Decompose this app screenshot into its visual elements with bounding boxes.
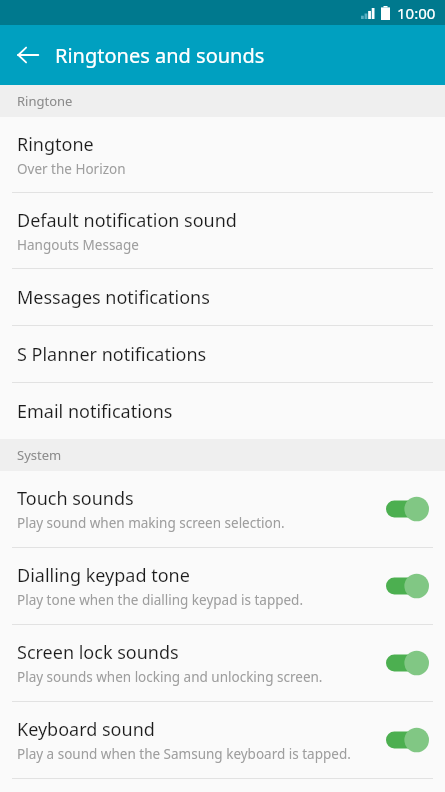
button[interactable]: Toggle: [386, 572, 429, 600]
staticText: Messages notifications: [17, 285, 210, 310]
button[interactable]: Default notification sound: [0, 193, 445, 268]
staticText: Play sounds when locking and unlocking s…: [17, 668, 323, 686]
button[interactable]: Email notifications: [0, 383, 445, 439]
button[interactable]: Touch sounds: [0, 471, 445, 547]
button[interactable]: Dialling keypad tone: [0, 548, 445, 624]
staticText: Play a sound when the Samsung keyboard i…: [17, 745, 351, 763]
staticText: Default notification sound: [17, 208, 237, 233]
staticText: Screen lock sounds: [17, 640, 179, 665]
button[interactable]: S Planner notifications: [0, 326, 445, 382]
button[interactable]: Toggle: [386, 649, 429, 677]
staticText: Ringtone: [17, 92, 73, 110]
staticText: Keyboard sound: [17, 717, 155, 742]
staticText: Touch sounds: [17, 486, 134, 511]
button[interactable]: Keyboard sound: [0, 702, 445, 778]
staticText: Ringtones and sounds: [55, 42, 265, 69]
button[interactable]: Back: [4, 31, 52, 79]
staticText: Play tone when the dialling keypad is ta…: [17, 591, 304, 609]
staticText: S Planner notifications: [17, 342, 207, 367]
staticText: Hangouts Message: [17, 236, 139, 254]
button[interactable]: Screen lock sounds: [0, 625, 445, 701]
button[interactable]: Toggle: [386, 726, 429, 754]
staticText: System: [17, 446, 62, 464]
staticText: Dialling keypad tone: [17, 563, 190, 588]
staticText: Email notifications: [17, 399, 173, 424]
staticText: Over the Horizon: [17, 160, 126, 178]
button[interactable]: Ringtone: [0, 117, 445, 192]
staticText: Play sound when making screen selection.: [17, 514, 285, 532]
staticText: 10:00: [397, 3, 436, 23]
button[interactable]: Messages notifications: [0, 269, 445, 325]
staticText: Ringtone: [17, 132, 94, 157]
button[interactable]: Toggle: [386, 495, 429, 523]
